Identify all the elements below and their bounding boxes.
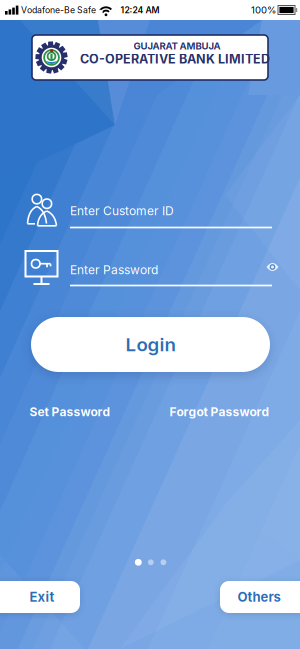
staticText: 100% <box>251 4 276 16</box>
staticText: CO-OPERATIVE BANK LIMITED <box>80 51 270 67</box>
button[interactable]: Set Password <box>29 405 110 419</box>
staticText: GUJARAT AMBUJA <box>133 40 220 52</box>
staticText: Forgot Password <box>169 405 269 419</box>
staticText: 12:24 AM <box>120 5 159 15</box>
staticText: Set Password <box>29 405 110 419</box>
button[interactable]: Forgot Password <box>169 405 269 419</box>
staticText: Others <box>237 589 280 605</box>
staticText: Enter Customer ID <box>70 204 174 218</box>
staticText: Enter Password <box>70 263 158 277</box>
button[interactable]: Others <box>220 581 300 613</box>
staticText: Vodafone-Be Safe <box>21 5 96 15</box>
staticText: Exit <box>29 589 54 605</box>
staticText: Login <box>125 333 175 356</box>
button[interactable]: Exit <box>0 581 80 613</box>
button[interactable]: Show password <box>262 259 282 275</box>
button[interactable]: Login <box>31 317 270 372</box>
